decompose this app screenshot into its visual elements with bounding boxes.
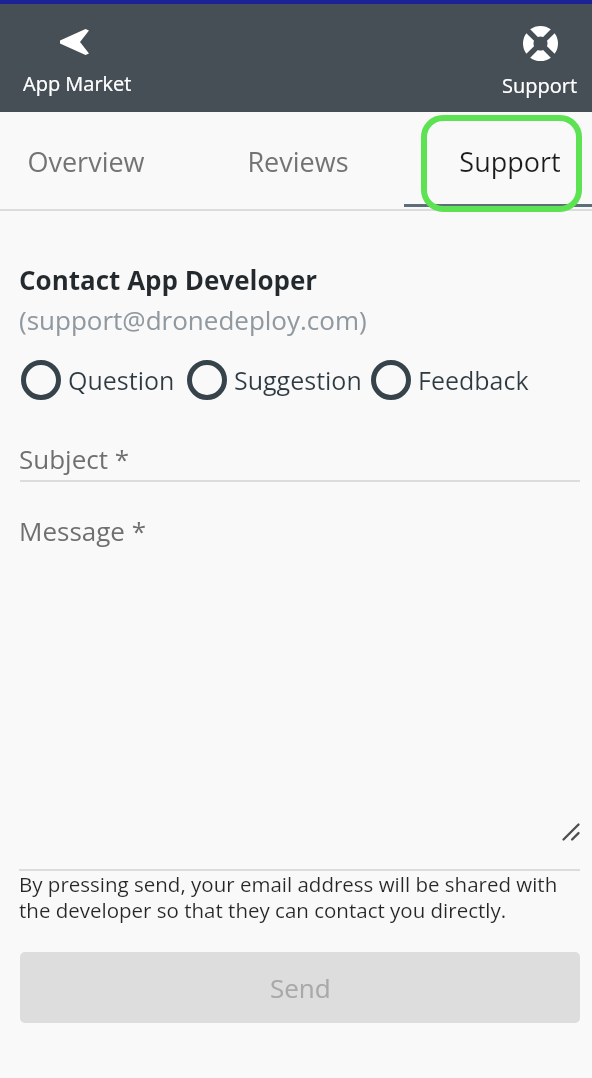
staticText: the developer so that they can contact y… <box>19 896 507 924</box>
button[interactable]: Suggestion <box>187 360 362 400</box>
button[interactable]: Navigate up to App Market <box>0 4 592 112</box>
button[interactable]: Support <box>404 112 592 211</box>
button[interactable]: Support <box>488 4 592 112</box>
staticText: Suggestion <box>234 363 362 397</box>
button[interactable]: Overview <box>0 112 192 211</box>
staticText: Support <box>502 72 578 99</box>
button[interactable]: Question <box>21 360 175 400</box>
staticText: By pressing send, your email address wil… <box>19 870 558 898</box>
staticText: Question <box>68 363 175 397</box>
button[interactable]: Reviews <box>192 112 404 211</box>
staticText: Support <box>459 143 561 180</box>
staticText: App Market <box>23 70 132 97</box>
button[interactable]: Feedback <box>371 360 529 400</box>
staticText: Send <box>270 970 331 1005</box>
button[interactable]: Send <box>20 952 580 1023</box>
staticText: (support@dronedeploy.com) <box>19 302 367 337</box>
staticText: Reviews <box>247 143 349 180</box>
staticText: Feedback <box>418 363 529 397</box>
staticText: Subject * <box>19 441 130 476</box>
staticText: Contact App Developer <box>19 262 318 297</box>
staticText: Message * <box>19 513 147 548</box>
staticText: Overview <box>27 143 145 180</box>
